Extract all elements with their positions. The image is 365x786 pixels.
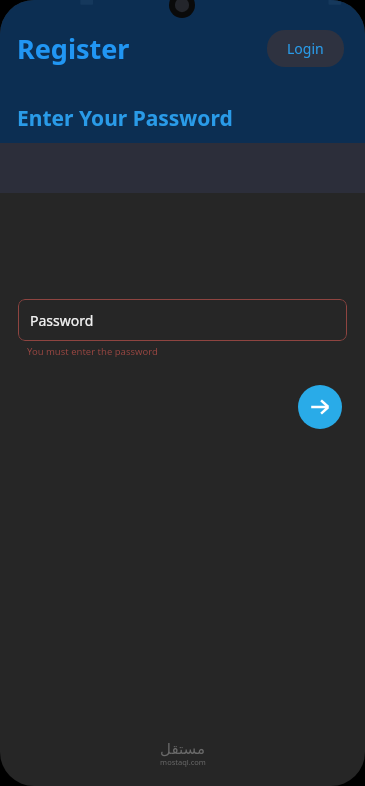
staticText: Register (17, 30, 130, 67)
button[interactable]: Login (267, 30, 344, 67)
staticText: Enter Your Password (17, 104, 233, 133)
staticText: Password (30, 311, 94, 330)
staticText: mostaql.com (160, 757, 206, 767)
staticText: مستقل (160, 740, 205, 757)
button[interactable]: Next (298, 385, 342, 429)
staticText: Login (287, 39, 324, 58)
button[interactable]: Password (18, 299, 347, 341)
staticText: You must enter the password (27, 345, 158, 358)
